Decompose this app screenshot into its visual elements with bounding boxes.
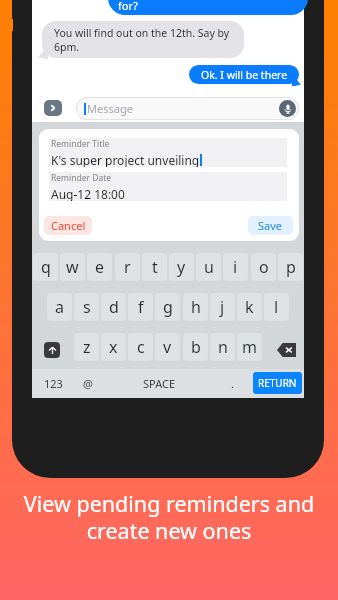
button[interactable]: Reminder Title (49, 138, 287, 167)
staticText: Cancel (51, 218, 86, 233)
staticText: d (109, 296, 119, 318)
staticText: r (124, 256, 131, 278)
button[interactable]: r (115, 253, 140, 281)
button[interactable]: App drawer (44, 100, 62, 116)
staticText: @ (83, 376, 93, 391)
button[interactable]: h (183, 293, 208, 321)
staticText: o (259, 256, 269, 278)
staticText: Aug-12 18:00 (51, 186, 125, 201)
button[interactable]: q (33, 253, 58, 281)
button[interactable]: l (264, 293, 289, 321)
staticText: Reminder Date (51, 172, 112, 184)
staticText: Message (87, 101, 133, 116)
button[interactable]: 123 (38, 373, 68, 393)
staticText: SPACE (143, 376, 176, 391)
button[interactable]: s (74, 293, 99, 321)
staticText: f (138, 296, 144, 318)
staticText: u (204, 256, 214, 278)
staticText: 123 (44, 376, 63, 391)
staticText: t (152, 256, 158, 278)
staticText: q (41, 256, 51, 278)
button[interactable]: g (155, 293, 180, 321)
staticText: e (95, 256, 105, 278)
staticText: s (83, 296, 91, 318)
staticText: . (231, 376, 234, 391)
button[interactable]: b (183, 333, 208, 361)
button[interactable]: o (251, 253, 276, 281)
staticText: z (83, 336, 91, 358)
staticText: Ok. I will be there (201, 68, 288, 82)
staticText: w (66, 256, 79, 278)
button[interactable]: Shift (44, 342, 60, 358)
staticText: K's super project unveiling (51, 152, 200, 167)
button[interactable]: a (47, 293, 72, 321)
staticText: y (177, 256, 186, 278)
staticText: j (220, 296, 225, 318)
staticText: l (274, 296, 279, 318)
button[interactable]: Save (248, 216, 293, 235)
button[interactable]: k (237, 293, 262, 321)
button[interactable]: Reminder Date (49, 172, 287, 201)
button[interactable]: j (210, 293, 235, 321)
button[interactable]: v (155, 333, 180, 361)
button[interactable]: p (278, 253, 303, 281)
staticText: h (191, 296, 201, 318)
staticText: v (163, 336, 172, 358)
button[interactable]: @ (73, 373, 103, 393)
staticText: n (218, 336, 228, 358)
staticText: p (286, 256, 296, 278)
staticText: k (245, 296, 254, 318)
button[interactable]: Backspace (277, 343, 296, 357)
staticText: for? (118, 0, 138, 13)
staticText: g (163, 296, 173, 318)
button[interactable]: SPACE (128, 373, 190, 393)
staticText: i (233, 256, 238, 278)
button[interactable]: x (101, 333, 126, 361)
staticText: Save (258, 218, 283, 233)
button[interactable]: e (87, 253, 112, 281)
button[interactable]: z (74, 333, 99, 361)
staticText: x (109, 336, 118, 358)
button[interactable]: u (196, 253, 221, 281)
button[interactable]: n (210, 333, 235, 361)
staticText: c (137, 336, 145, 358)
staticText: You will find out on the 12th. Say by 6p… (54, 26, 230, 54)
button[interactable]: i (223, 253, 248, 281)
button[interactable]: y (169, 253, 194, 281)
button[interactable]: RETURN (253, 372, 302, 394)
staticText: m (242, 336, 257, 358)
button[interactable]: f (128, 293, 153, 321)
staticText: View pending reminders and create new on… (4, 489, 334, 545)
staticText: b (191, 336, 201, 358)
button[interactable]: d (101, 293, 126, 321)
button[interactable]: Voice message (279, 100, 296, 117)
staticText: RETURN (258, 376, 297, 390)
button[interactable]: . (217, 373, 247, 393)
button[interactable]: t (142, 253, 167, 281)
staticText: Reminder Title (51, 138, 110, 150)
button[interactable]: w (60, 253, 85, 281)
button[interactable]: Cancel (44, 216, 92, 235)
button[interactable]: c (128, 333, 153, 361)
staticText: a (55, 296, 64, 318)
button[interactable]: m (237, 333, 262, 361)
button[interactable]: Message (77, 98, 298, 119)
